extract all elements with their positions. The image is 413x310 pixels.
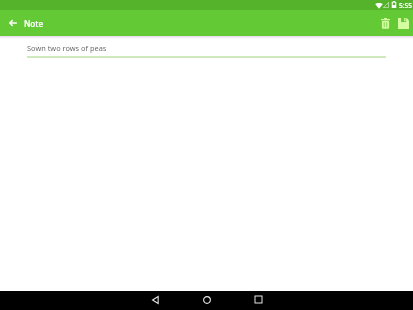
button[interactable]: Home: [181, 290, 233, 309]
button[interactable]: Back: [0, 10, 26, 36]
button[interactable]: Recents: [232, 290, 284, 309]
button[interactable]: Save: [390, 10, 413, 36]
staticText: Note: [24, 18, 44, 29]
button[interactable]: Back: [129, 290, 181, 309]
staticText: Sown two rows of peas: [27, 43, 107, 53]
staticText: 5:55: [399, 1, 413, 10]
button[interactable]: Sown two rows of peas: [27, 41, 386, 58]
button[interactable]: Delete: [372, 10, 398, 36]
